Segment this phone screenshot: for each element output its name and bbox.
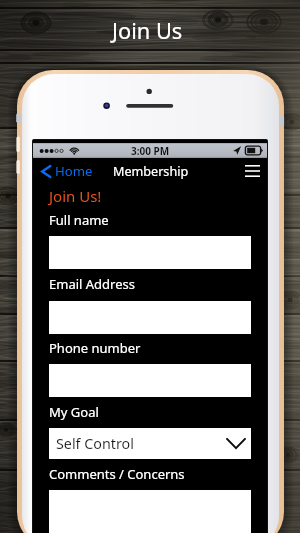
- staticText: Join Us!: [49, 186, 102, 206]
- staticText: Join Us: [112, 16, 183, 46]
- staticText: 3:00 PM: [131, 144, 170, 158]
- staticText: Full name: [49, 211, 109, 229]
- staticText: Comments / Concerns: [49, 465, 185, 483]
- staticText: Phone number: [49, 339, 141, 357]
- button[interactable]: Self Control: [49, 428, 251, 459]
- staticText: Email Address: [49, 275, 135, 293]
- staticText: Self Control: [56, 434, 134, 453]
- staticText: My Goal: [49, 403, 99, 421]
- staticText: Home: [55, 162, 93, 180]
- staticText: Membership: [113, 163, 189, 180]
- button[interactable]: Menu: [240, 159, 264, 183]
- button[interactable]: Home: [40, 162, 93, 180]
